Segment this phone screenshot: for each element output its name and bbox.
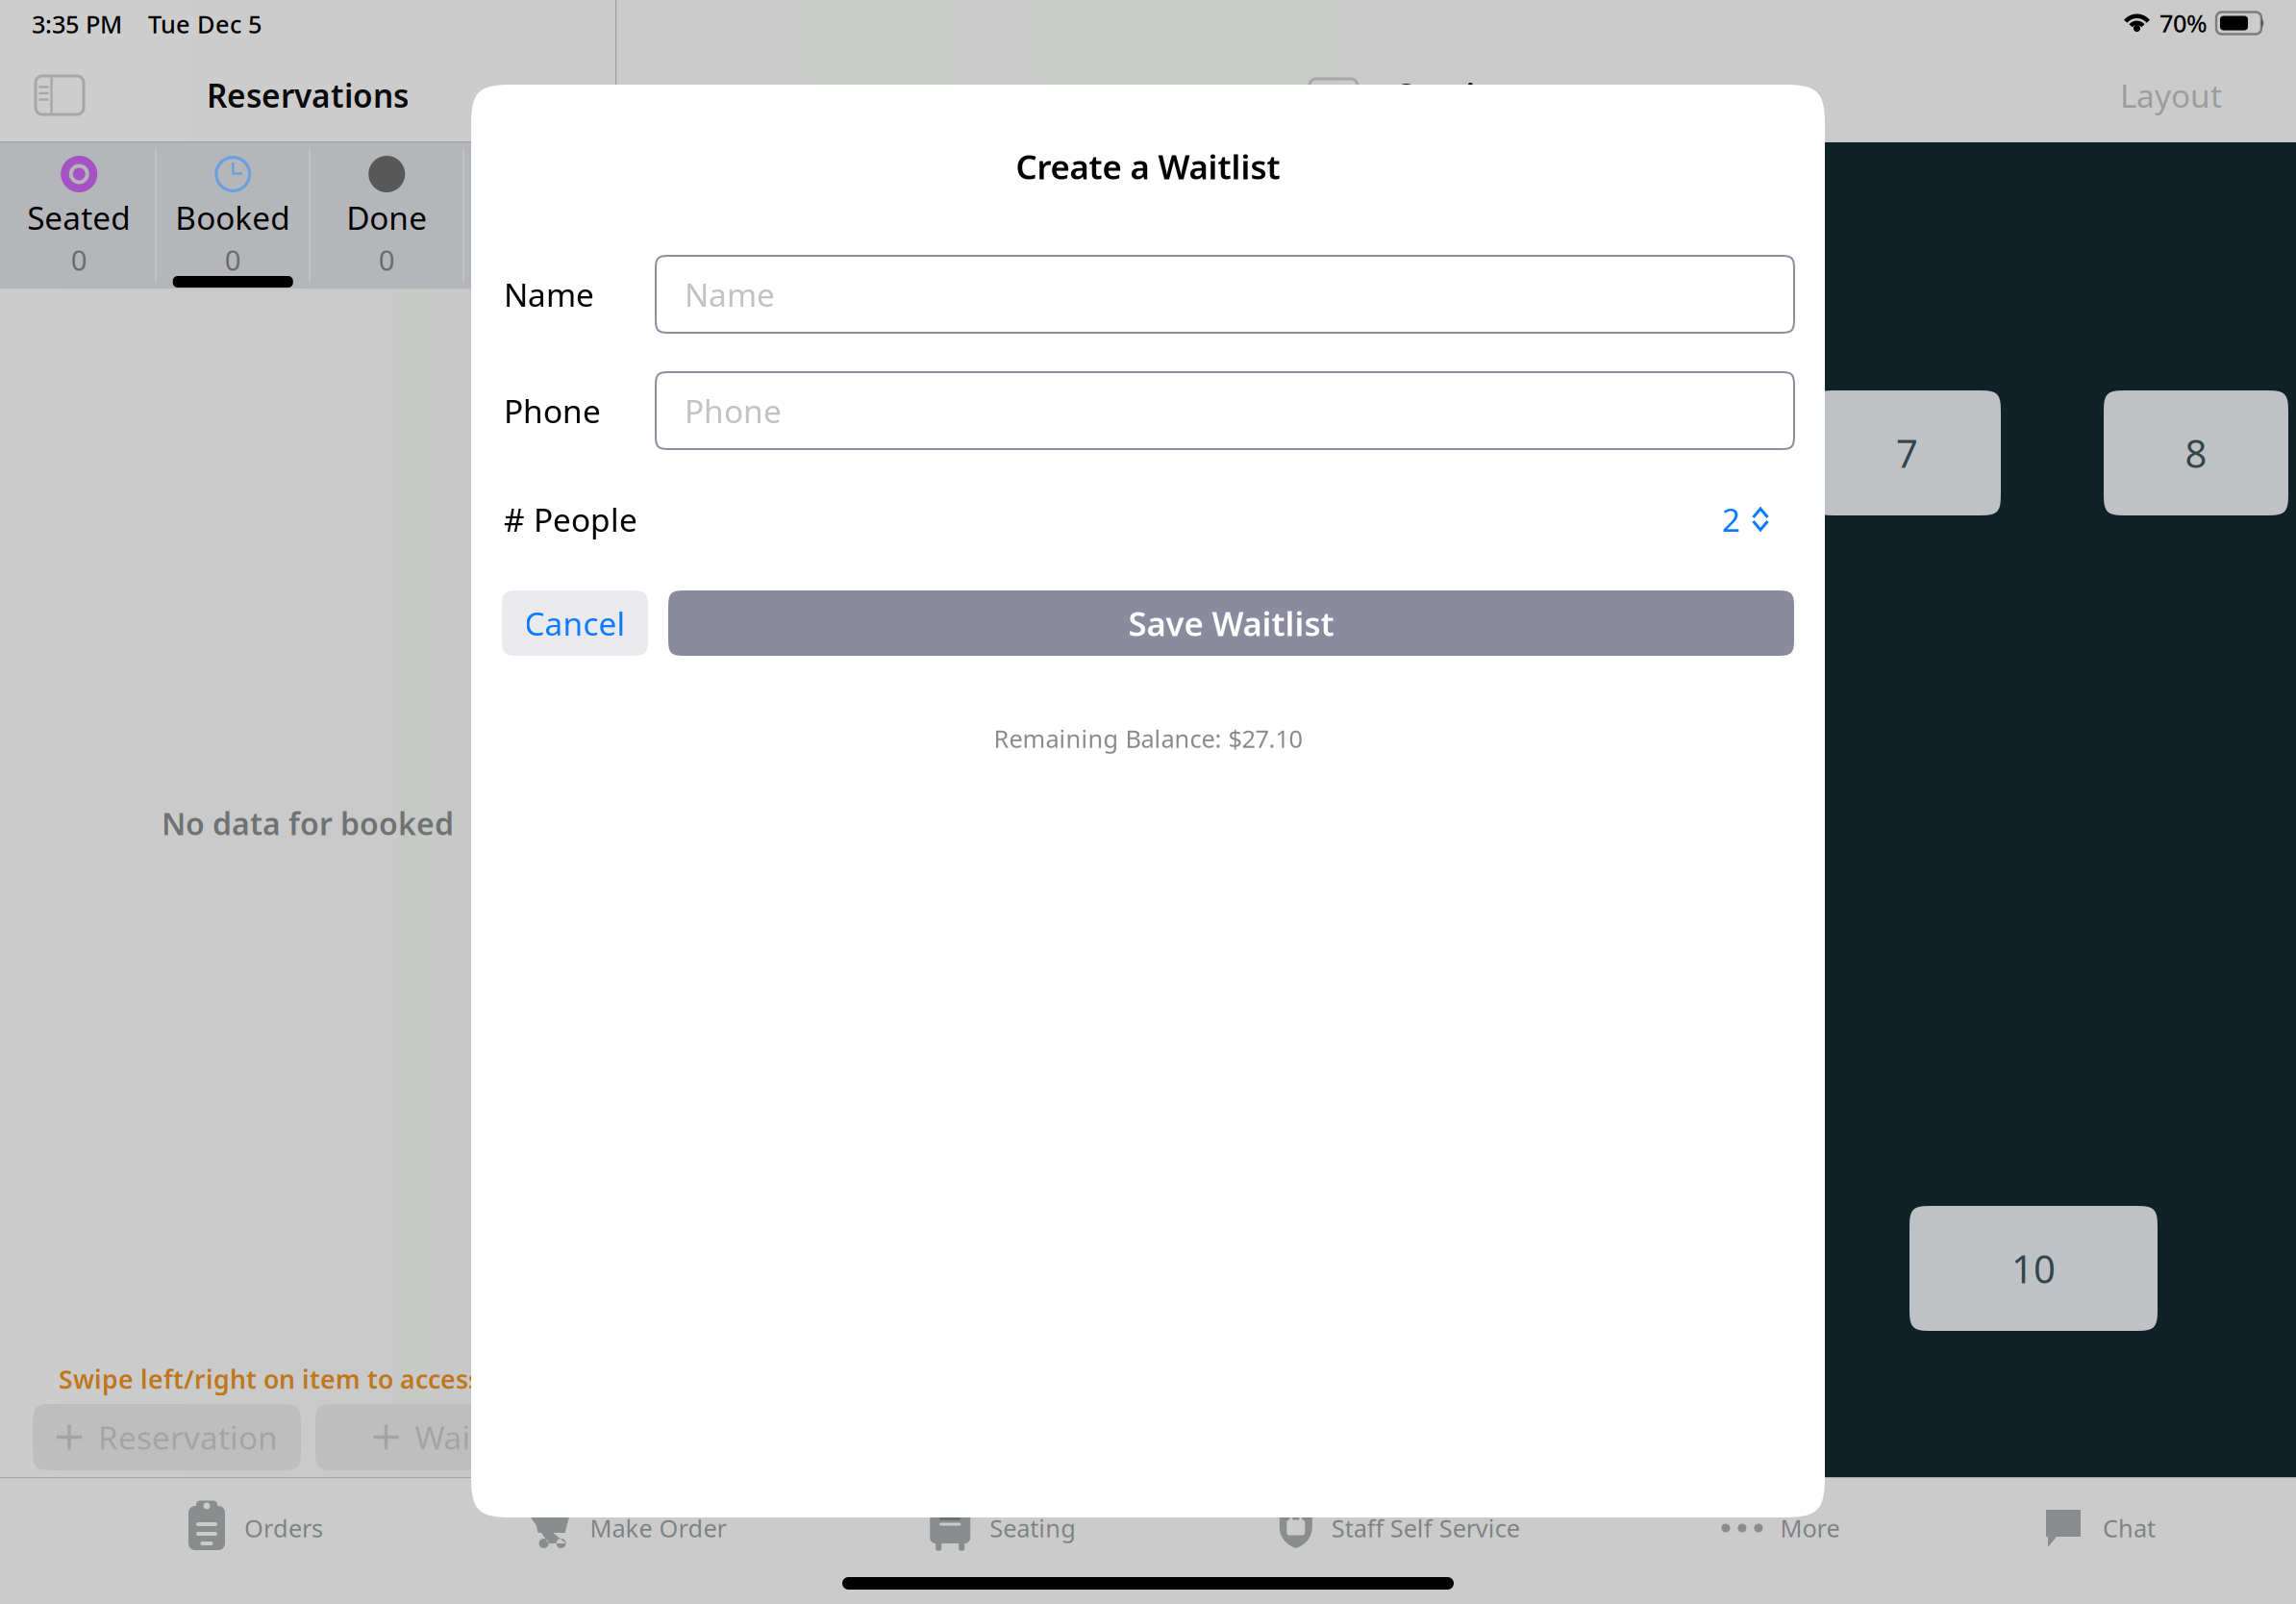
button[interactable]: Reservation xyxy=(33,1404,301,1470)
staticText: Layout xyxy=(2120,74,2222,117)
staticText: Done xyxy=(346,196,427,239)
staticText: Cancel xyxy=(524,602,625,644)
button[interactable]: Cancel xyxy=(502,590,648,656)
staticText: 70% xyxy=(2159,7,2208,39)
button[interactable]: Save Waitlist xyxy=(668,590,1794,656)
staticText: Phone xyxy=(685,389,782,432)
staticText: Orders xyxy=(244,1512,323,1544)
button[interactable]: Seated xyxy=(3,142,155,288)
staticText: 7 xyxy=(1896,427,1918,478)
staticText: Create a Waitlist xyxy=(1016,144,1280,188)
button[interactable]: More xyxy=(1722,1478,1840,1578)
button[interactable]: Done xyxy=(311,142,463,288)
button[interactable]: Waitlist xyxy=(315,1404,584,1470)
button[interactable]: 8 xyxy=(2104,390,2288,515)
staticText: More xyxy=(1780,1512,1840,1544)
button[interactable]: New xyxy=(1310,79,1358,117)
staticText: 0 xyxy=(225,241,241,278)
staticText: Name xyxy=(685,273,775,316)
button[interactable]: 2 xyxy=(1722,498,1769,541)
staticText: Reservations xyxy=(207,74,409,117)
staticText: Save Waitlist xyxy=(1128,601,1334,645)
staticText: Seating xyxy=(990,1512,1076,1544)
button[interactable]: Booked xyxy=(157,142,309,288)
button[interactable]: 10 xyxy=(1909,1206,2158,1331)
button[interactable]: Show Sidebar xyxy=(36,76,84,114)
staticText: No data for booked xyxy=(162,803,454,844)
staticText: 0 xyxy=(379,241,395,278)
staticText: # People xyxy=(504,498,637,541)
staticText: Make Order xyxy=(590,1512,726,1544)
staticText: 0 xyxy=(71,241,87,278)
staticText: Tue Dec 5 xyxy=(148,8,262,40)
staticText: 8 xyxy=(2185,427,2207,478)
staticText: Remaining Balance: $27.10 xyxy=(994,722,1302,755)
staticText: 2 xyxy=(1722,498,1740,541)
staticText: Seating xyxy=(1397,74,1515,117)
button[interactable]: Seating xyxy=(929,1478,1076,1578)
staticText: 10 xyxy=(2011,1243,2056,1294)
staticText: Reservation xyxy=(98,1416,278,1459)
button[interactable]: Layout xyxy=(2084,52,2258,138)
staticText: Staff Self Service xyxy=(1331,1512,1520,1544)
button[interactable]: Chat xyxy=(2042,1478,2156,1578)
button[interactable]: Make Order xyxy=(526,1478,726,1578)
staticText: Chat xyxy=(2103,1512,2156,1544)
staticText: Name xyxy=(504,273,594,316)
button[interactable]: Staff Self Service xyxy=(1279,1478,1520,1578)
staticText: Swipe left/right on item to access actio… xyxy=(59,1362,578,1396)
staticText: Waitlist xyxy=(415,1416,526,1459)
button[interactable]: 7 xyxy=(1813,390,2001,515)
button[interactable]: Orders xyxy=(187,1478,323,1578)
staticText: Phone xyxy=(504,389,601,432)
staticText: Booked xyxy=(175,196,291,239)
staticText: Seated xyxy=(27,196,131,239)
staticText: 3:35 PM xyxy=(32,8,122,40)
